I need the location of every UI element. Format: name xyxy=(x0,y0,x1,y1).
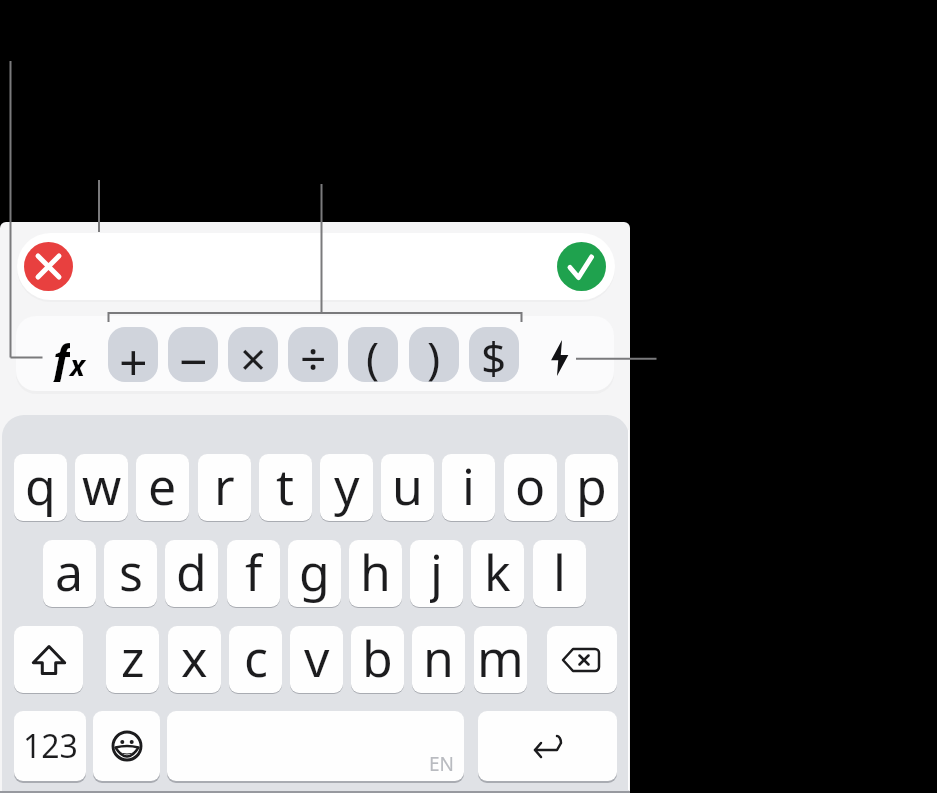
button[interactable]: − xyxy=(168,327,218,382)
button[interactable] xyxy=(549,340,570,376)
staticText: c xyxy=(244,626,268,691)
staticText: EN xyxy=(429,751,455,777)
button[interactable]: n xyxy=(412,626,465,693)
button[interactable]: m xyxy=(474,626,527,693)
staticText: x xyxy=(70,346,85,384)
button[interactable]: s xyxy=(104,540,157,607)
button[interactable]: $ xyxy=(469,327,519,382)
button[interactable] xyxy=(478,711,617,781)
button[interactable]: h xyxy=(349,540,402,607)
staticText: a xyxy=(55,540,84,605)
button[interactable] xyxy=(557,242,606,291)
staticText: ( xyxy=(366,327,380,382)
staticText: $ xyxy=(481,327,507,382)
button[interactable]: p xyxy=(565,454,618,521)
staticText: r xyxy=(214,454,235,519)
staticText: × xyxy=(240,327,267,382)
button[interactable]: q xyxy=(14,454,67,521)
staticText: f xyxy=(53,330,70,382)
button[interactable]: w xyxy=(75,454,128,521)
staticText: t xyxy=(276,454,295,519)
staticText: ) xyxy=(427,327,441,382)
staticText: − xyxy=(179,327,208,382)
button[interactable]: c xyxy=(229,626,282,693)
button[interactable]: d xyxy=(165,540,218,607)
staticText: u xyxy=(392,454,423,519)
staticText: i xyxy=(462,454,475,519)
staticText: f xyxy=(245,540,263,605)
staticText: s xyxy=(119,540,143,605)
button[interactable]: z xyxy=(106,626,159,693)
button[interactable]: o xyxy=(504,454,557,521)
staticText: q xyxy=(25,454,56,519)
button[interactable]: l xyxy=(533,540,586,607)
button[interactable]: r xyxy=(198,454,251,521)
button[interactable]: f xyxy=(227,540,280,607)
staticText: g xyxy=(299,540,330,605)
button[interactable]: 123 xyxy=(14,711,86,781)
staticText: d xyxy=(176,540,207,605)
button[interactable] xyxy=(24,242,73,291)
staticText: h xyxy=(360,540,391,605)
button[interactable]: i xyxy=(442,454,495,521)
staticText: o xyxy=(515,454,546,519)
staticText: l xyxy=(553,540,566,605)
button[interactable]: ÷ xyxy=(288,327,338,382)
button[interactable]: v xyxy=(290,626,343,693)
staticText: v xyxy=(304,626,330,691)
button[interactable]: j xyxy=(410,540,463,607)
staticText: y xyxy=(334,454,360,519)
staticText: k xyxy=(484,540,511,605)
button[interactable]: t xyxy=(259,454,312,521)
button[interactable] xyxy=(14,626,83,693)
staticText: e xyxy=(148,454,177,519)
staticText: w xyxy=(82,454,122,519)
button[interactable]: u xyxy=(381,454,434,521)
staticText: m xyxy=(477,626,524,691)
staticText: b xyxy=(362,626,393,691)
staticText: + xyxy=(119,327,148,382)
button[interactable]: ( xyxy=(348,327,398,382)
staticText: x xyxy=(181,626,208,691)
button[interactable] xyxy=(93,711,160,781)
button[interactable]: y xyxy=(320,454,373,521)
button[interactable]: g xyxy=(288,540,341,607)
button[interactable]: x xyxy=(168,626,221,693)
staticText: n xyxy=(423,626,454,691)
staticText: 123 xyxy=(23,724,78,768)
button[interactable]: e xyxy=(136,454,189,521)
staticText: j xyxy=(430,540,443,605)
button[interactable]: b xyxy=(351,626,404,693)
staticText: p xyxy=(576,454,607,519)
staticText: ÷ xyxy=(300,327,327,382)
button[interactable]: EN xyxy=(167,711,464,781)
button[interactable]: ) xyxy=(409,327,459,382)
button[interactable]: f xyxy=(46,330,91,382)
button[interactable]: k xyxy=(471,540,524,607)
button[interactable] xyxy=(547,626,617,693)
staticText: z xyxy=(121,626,145,691)
button[interactable]: × xyxy=(228,327,278,382)
button[interactable]: + xyxy=(108,327,158,382)
button[interactable]: a xyxy=(43,540,96,607)
